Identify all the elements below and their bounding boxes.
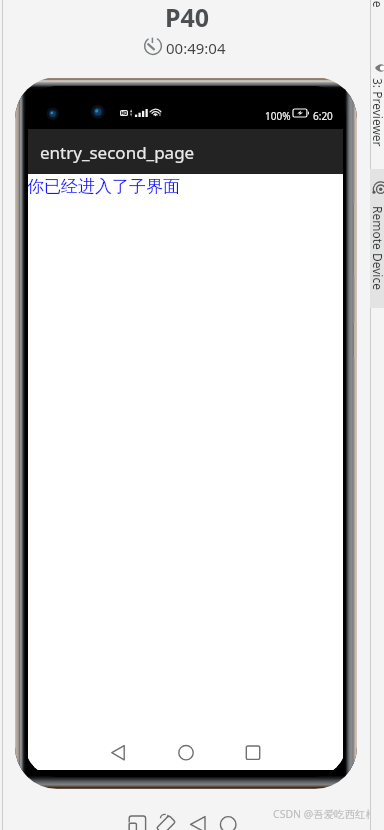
staticText: Gradle — [370, 0, 384, 8]
staticText: 3: Previewer — [370, 78, 384, 147]
staticText: 100% — [265, 109, 291, 123]
button[interactable]: Remote Device — [370, 178, 384, 308]
staticText: 你已经进入了子界面 — [27, 176, 180, 197]
staticText: CSDN @吾爱吃西红柿 — [273, 807, 377, 821]
button[interactable]: Back — [189, 814, 209, 830]
button[interactable]: Screenshot — [128, 814, 148, 830]
staticText: Remote Device — [370, 206, 384, 290]
button[interactable]: Home — [219, 814, 239, 830]
button[interactable]: Gradle — [371, 0, 384, 14]
staticText: 6:20 — [313, 109, 333, 123]
staticText: 00:49:04 — [166, 38, 226, 58]
button[interactable]: 3: Previewer — [370, 56, 384, 141]
staticText: P40 — [165, 0, 210, 34]
staticText: entry_second_page — [40, 141, 195, 164]
button[interactable]: Rotate — [156, 814, 176, 830]
